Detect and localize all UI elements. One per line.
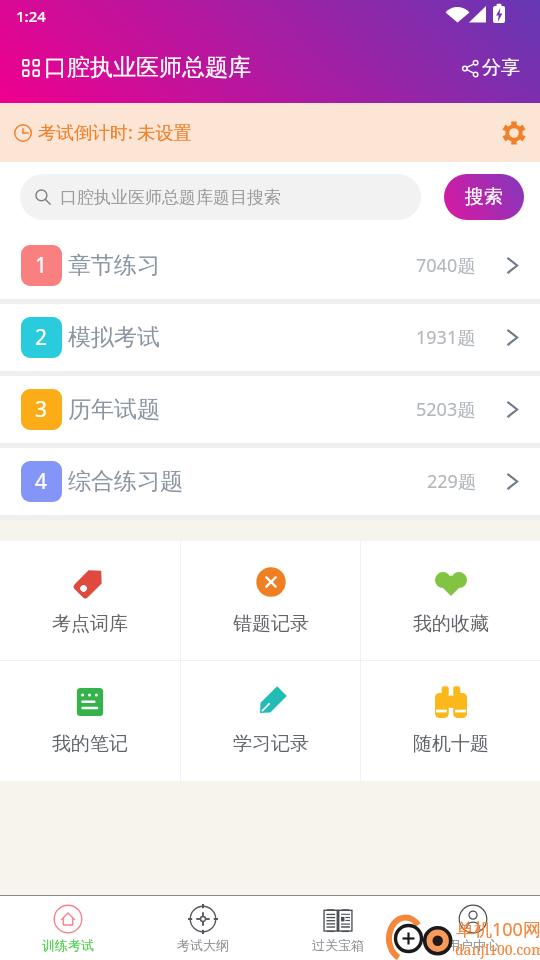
staticText: 4 [35, 467, 48, 496]
staticText: 1:24 [16, 6, 46, 26]
button[interactable]: 分享 [459, 53, 523, 83]
button[interactable]: 3 [0, 376, 540, 443]
staticText: 历年试题 [68, 395, 160, 424]
staticText: 综合练习题 [68, 467, 183, 496]
button[interactable]: 我的笔记 [0, 661, 180, 781]
staticText: 考试大纲 [177, 937, 229, 953]
button[interactable]: 1 [0, 232, 540, 299]
staticText: 错题记录 [233, 612, 309, 636]
staticText: 口腔执业医师总题库题目搜索 [60, 187, 281, 208]
staticText: 随机十题 [413, 732, 489, 756]
staticText: 考试倒计时: 未设置 [38, 120, 192, 145]
staticText: 1 [35, 251, 48, 280]
staticText: 229题 [427, 469, 476, 494]
staticText: 章节练习 [68, 251, 160, 280]
button[interactable]: 2 [0, 304, 540, 371]
button[interactable]: 学习记录 [181, 661, 360, 781]
staticText: 学习记录 [233, 732, 309, 756]
staticText: danji100.com [455, 940, 540, 959]
staticText: 分享 [482, 56, 520, 80]
staticText: 我的笔记 [52, 732, 128, 756]
staticText: 我的收藏 [413, 612, 489, 636]
button[interactable]: 考试倒计时: 未设置 [0, 103, 540, 162]
button[interactable]: 我的收藏 [361, 541, 540, 660]
button[interactable]: 考试大纲 [135, 896, 270, 960]
button[interactable]: 训练考试 [0, 896, 135, 960]
staticText: 过关宝箱 [312, 937, 364, 953]
staticText: 用户中心 [447, 937, 499, 953]
button[interactable]: 倒计时设置 [500, 119, 528, 147]
button[interactable]: 用户中心 [405, 896, 540, 960]
staticText: 考点词库 [52, 612, 128, 636]
staticText: 7040题 [416, 253, 476, 278]
button[interactable]: 口腔执业医师总题库题目搜索 [20, 174, 421, 220]
staticText: 训练考试 [42, 937, 94, 953]
staticText: 模拟考试 [68, 323, 160, 352]
button[interactable]: 随机十题 [361, 661, 540, 781]
button[interactable]: 4 [0, 448, 540, 515]
staticText: 2 [35, 323, 48, 352]
button[interactable]: 考点词库 [0, 541, 180, 660]
staticText: 单机100网 [456, 917, 540, 942]
staticText: 5203题 [416, 397, 476, 422]
button[interactable]: 搜索 [444, 174, 524, 220]
button[interactable]: 错题记录 [181, 541, 360, 660]
staticText: 搜索 [465, 185, 503, 209]
staticText: 3 [35, 395, 48, 424]
staticText: 1931题 [416, 325, 476, 350]
button[interactable]: 过关宝箱 [270, 896, 405, 960]
staticText: 口腔执业医师总题库 [44, 53, 251, 82]
